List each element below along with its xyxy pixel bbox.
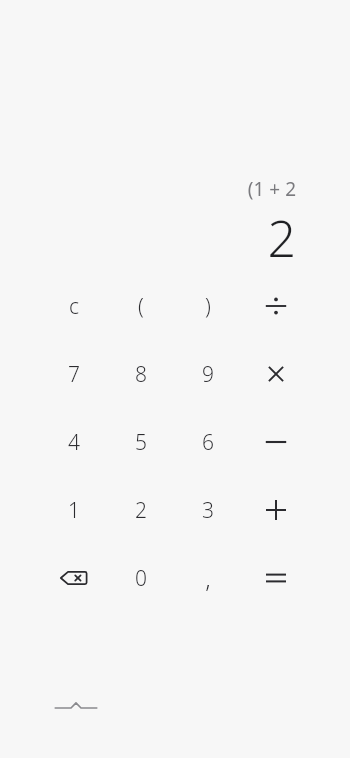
button[interactable]: ( (107, 272, 174, 340)
button[interactable]: 0 (107, 544, 174, 612)
staticText: 6 (202, 428, 214, 457)
staticText: 4 (68, 428, 80, 457)
button[interactable]: , (174, 544, 242, 612)
staticText: 0 (135, 564, 147, 593)
staticText: c (69, 292, 79, 321)
staticText: 8 (135, 360, 147, 389)
staticText: 3 (202, 496, 214, 525)
staticText: ( (138, 292, 144, 321)
button[interactable]: 7 (40, 340, 107, 408)
button[interactable]: 8 (107, 340, 174, 408)
staticText: 2 (0, 204, 296, 272)
button[interactable]: 5 (107, 408, 174, 476)
button[interactable]: Backspace (40, 544, 107, 612)
staticText: (1 + 2 (0, 176, 296, 202)
button[interactable]: 4 (40, 408, 107, 476)
staticText: ) (205, 292, 211, 321)
button[interactable]: Equals (242, 544, 310, 612)
staticText: 9 (202, 360, 214, 389)
button[interactable]: 2 (107, 476, 174, 544)
button[interactable]: 6 (174, 408, 242, 476)
button[interactable]: 3 (174, 476, 242, 544)
staticText: , (205, 562, 211, 595)
button[interactable]: 1 (40, 476, 107, 544)
button[interactable]: Minus (242, 408, 310, 476)
button[interactable]: Expand history (50, 694, 102, 720)
staticText: 2 (135, 496, 147, 525)
button[interactable]: c (40, 272, 107, 340)
button[interactable]: Plus (242, 476, 310, 544)
staticText: 5 (135, 428, 147, 457)
button[interactable]: Divide (242, 272, 310, 340)
button[interactable]: Multiply (242, 340, 310, 408)
button[interactable]: 9 (174, 340, 242, 408)
staticText: 1 (68, 496, 80, 525)
staticText: 7 (68, 360, 80, 389)
button[interactable]: ) (174, 272, 242, 340)
